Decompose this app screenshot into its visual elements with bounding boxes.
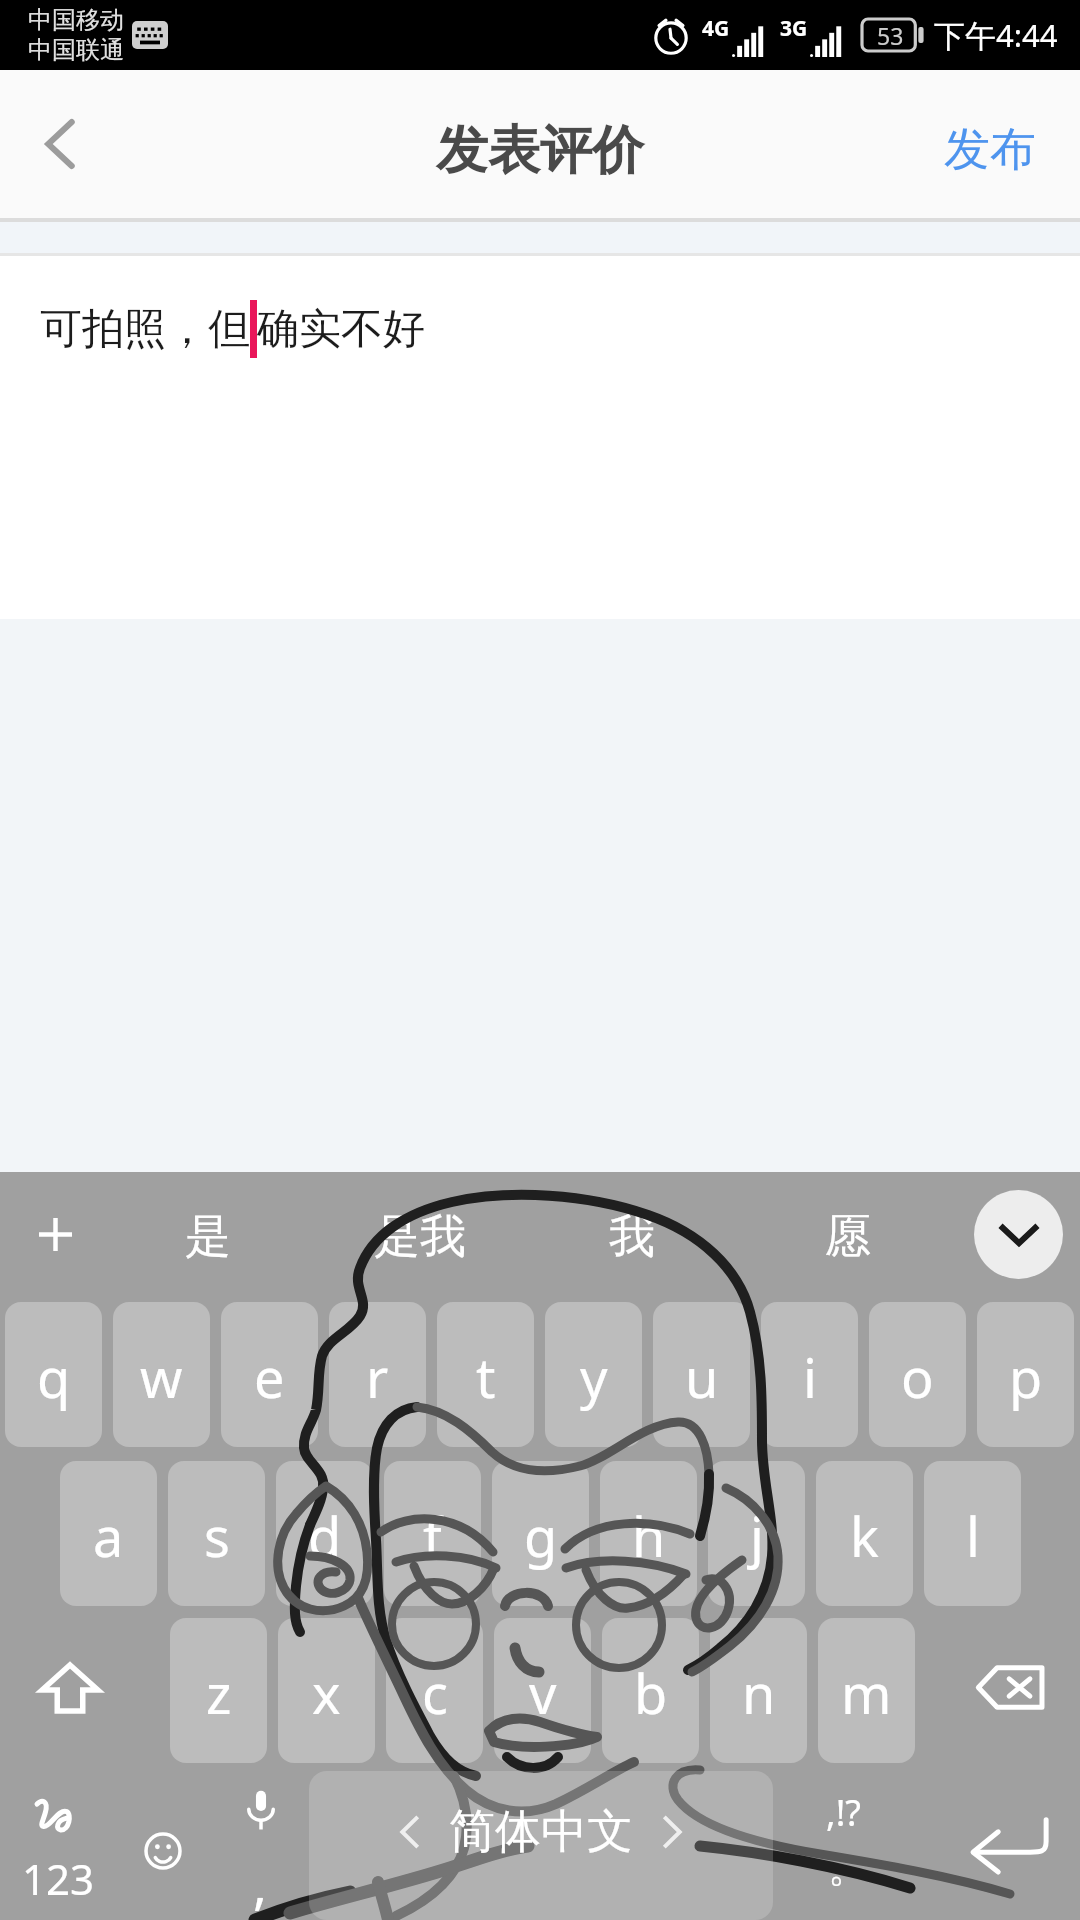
staticText: ,!? — [826, 1788, 861, 1837]
staticText: 我 — [609, 1208, 655, 1266]
staticText: g — [524, 1499, 558, 1573]
staticText: 是我 — [374, 1208, 466, 1266]
button[interactable]: Shift — [10, 1613, 130, 1762]
staticText: x — [312, 1656, 341, 1730]
button[interactable]: Backspace — [945, 1613, 1075, 1762]
staticText: v — [529, 1656, 557, 1730]
staticText: h — [632, 1499, 666, 1573]
button[interactable]: w — [113, 1302, 210, 1447]
button[interactable]: v — [494, 1618, 591, 1763]
staticText: 中国移动 — [28, 5, 124, 35]
staticText: s — [204, 1499, 230, 1573]
staticText: 中国联通 — [28, 35, 124, 65]
staticText: 可拍照，但 — [40, 303, 250, 356]
staticText: 3G — [780, 14, 808, 43]
button[interactable]: q — [5, 1302, 102, 1447]
staticText: t — [476, 1340, 496, 1414]
staticText: 确实不好 — [257, 303, 425, 356]
button[interactable]: Hide keyboard — [974, 1190, 1063, 1279]
staticText: w — [140, 1340, 183, 1414]
staticText: , — [253, 1848, 267, 1919]
button[interactable]: 是 — [143, 1172, 273, 1297]
staticText: i — [803, 1340, 817, 1414]
staticText: q — [37, 1340, 71, 1414]
staticText: 下午4:44 — [934, 14, 1058, 56]
button[interactable]: f — [384, 1461, 481, 1606]
button[interactable]: h — [600, 1461, 697, 1606]
staticText: m — [841, 1656, 892, 1730]
staticText: e — [254, 1340, 285, 1414]
staticText: p — [1009, 1340, 1043, 1414]
staticText: 简体中文 — [449, 1803, 633, 1861]
button[interactable]: p — [977, 1302, 1074, 1447]
staticText: b — [634, 1656, 668, 1730]
button[interactable]: y — [545, 1302, 642, 1447]
staticText: 53 — [877, 20, 904, 51]
button[interactable]: 我 — [567, 1172, 697, 1297]
button[interactable]: c — [386, 1618, 483, 1763]
button[interactable]: k — [816, 1461, 913, 1606]
button[interactable]: Enter — [940, 1770, 1080, 1920]
button[interactable]: u — [653, 1302, 750, 1447]
staticText: 123 — [22, 1850, 95, 1907]
button[interactable]: s — [168, 1461, 265, 1606]
staticText: u — [685, 1340, 719, 1414]
button[interactable]: t — [437, 1302, 534, 1447]
staticText: 愿 — [825, 1208, 871, 1266]
staticText: 是 — [185, 1208, 231, 1266]
button[interactable]: j — [708, 1461, 805, 1606]
staticText: d — [308, 1499, 342, 1573]
button[interactable]: z — [170, 1618, 267, 1763]
staticText: a — [93, 1499, 124, 1573]
button[interactable]: e — [221, 1302, 318, 1447]
button[interactable]: r — [329, 1302, 426, 1447]
staticText: k — [850, 1499, 879, 1573]
button[interactable]: 是我 — [355, 1172, 485, 1297]
staticText: 。 — [828, 1842, 868, 1892]
button[interactable]: x — [278, 1618, 375, 1763]
staticText: r — [366, 1340, 389, 1414]
staticText: z — [206, 1656, 232, 1730]
button[interactable]: Voice input and comma — [215, 1770, 325, 1920]
button[interactable]: More — [5, 1172, 105, 1297]
button[interactable]: i — [761, 1302, 858, 1447]
button[interactable]: o — [869, 1302, 966, 1447]
staticText: j — [750, 1499, 764, 1573]
staticText: o — [901, 1340, 934, 1414]
button[interactable]: b — [602, 1618, 699, 1763]
staticText: 4G — [702, 14, 730, 43]
staticText: 发布 — [944, 121, 1036, 179]
button[interactable]: Emoji — [118, 1770, 208, 1920]
button[interactable]: Punctuation — [800, 1770, 930, 1920]
staticText: 发表评价 — [436, 118, 644, 184]
staticText: n — [742, 1656, 776, 1730]
staticText: l — [966, 1499, 980, 1573]
button[interactable]: a — [60, 1461, 157, 1606]
button[interactable]: l — [924, 1461, 1021, 1606]
button[interactable]: 简体中文 — [309, 1771, 773, 1920]
staticText: f — [423, 1499, 442, 1573]
button[interactable]: n — [710, 1618, 807, 1763]
button[interactable]: 发布 — [904, 70, 1080, 218]
button[interactable]: m — [818, 1618, 915, 1763]
button[interactable]: 愿 — [783, 1172, 913, 1297]
button[interactable]: Back — [0, 70, 120, 218]
button[interactable]: Handwriting and numbers — [0, 1770, 140, 1920]
button[interactable]: d — [276, 1461, 373, 1606]
button[interactable]: g — [492, 1461, 589, 1606]
staticText: c — [422, 1656, 448, 1730]
staticText: y — [580, 1340, 608, 1414]
